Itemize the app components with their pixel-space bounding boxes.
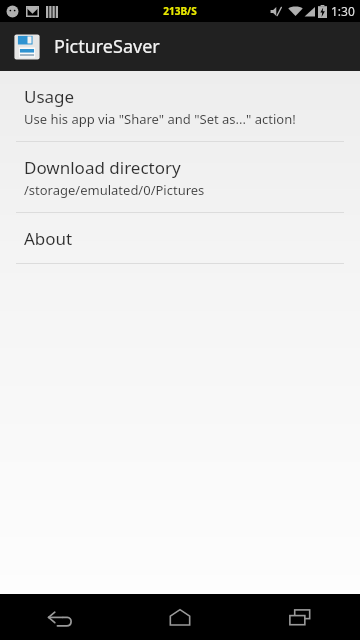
button[interactable]: Home xyxy=(120,594,240,640)
button[interactable]: About xyxy=(0,213,360,263)
staticText: About xyxy=(24,227,73,250)
button[interactable]: Recent apps xyxy=(240,594,360,640)
staticText: Download directory xyxy=(24,156,181,179)
staticText: /storage/emulated/0/Pictures xyxy=(24,181,205,199)
staticText: Usage xyxy=(24,85,75,108)
staticText: Use his app via "Share" and "Set as..." … xyxy=(24,110,296,128)
button[interactable]: Back xyxy=(0,594,120,640)
staticText: 213B/S xyxy=(163,4,197,18)
staticText: 1:30 xyxy=(331,3,355,19)
button[interactable]: Usage xyxy=(0,71,360,141)
button[interactable]: Download directory xyxy=(0,142,360,212)
staticText: PictureSaver xyxy=(54,34,160,59)
